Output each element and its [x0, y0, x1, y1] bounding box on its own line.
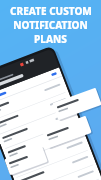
button[interactable]: Notification plans app screenshot: [0, 0, 101, 180]
staticText: CREATE CUSTOM: [10, 4, 92, 18]
button[interactable]: CREATE CUSTOM: [3, 4, 98, 46]
staticText: NOTIFICATION: [13, 18, 88, 32]
staticText: PLANS: [34, 32, 67, 46]
